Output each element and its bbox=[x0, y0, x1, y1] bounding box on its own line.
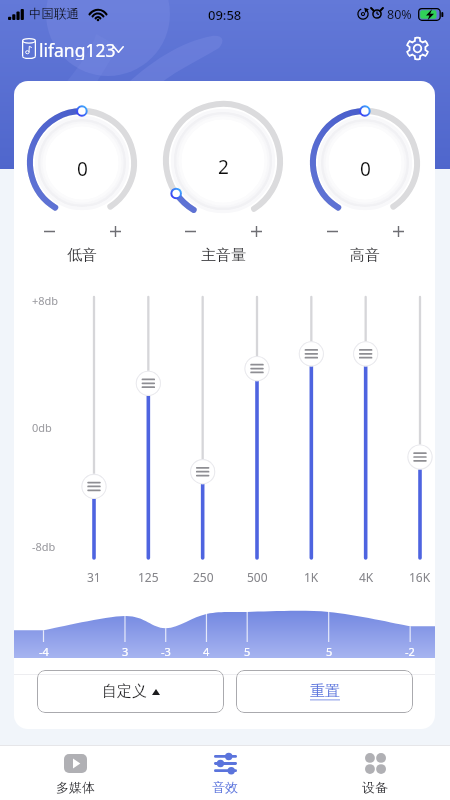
staticText: 5 bbox=[326, 644, 333, 659]
staticText: 500 bbox=[247, 569, 268, 585]
button[interactable]: Band 500 level bbox=[240, 291, 274, 564]
button[interactable]: 自定义 bbox=[37, 670, 224, 713]
button[interactable]: Decrease 主音量 bbox=[179, 220, 201, 242]
staticText: 80% bbox=[387, 6, 412, 23]
staticText: 0 bbox=[360, 156, 371, 182]
button[interactable]: lifang123 bbox=[16, 32, 129, 66]
staticText: 3 bbox=[122, 644, 129, 659]
button[interactable]: 设备 bbox=[300, 746, 450, 795]
staticText: 2 bbox=[218, 154, 229, 180]
button[interactable]: Band 250 level bbox=[186, 291, 220, 564]
staticText: 重置 bbox=[310, 682, 340, 701]
staticText: 多媒体 bbox=[56, 779, 95, 795]
button[interactable]: 重置 bbox=[236, 670, 413, 713]
staticText: 0 bbox=[77, 156, 88, 182]
staticText: 低音 bbox=[67, 246, 97, 265]
staticText: 125 bbox=[138, 569, 159, 585]
staticText: 5 bbox=[244, 644, 251, 659]
staticText: +8db bbox=[32, 293, 59, 308]
staticText: 1K bbox=[304, 569, 319, 585]
staticText: -4 bbox=[39, 644, 49, 659]
staticText: 0db bbox=[32, 420, 52, 435]
button[interactable]: Increase 低音 bbox=[104, 220, 126, 242]
staticText: 音效 bbox=[212, 779, 238, 795]
button[interactable]: Decrease 高音 bbox=[321, 220, 343, 242]
staticText: 中国联通 bbox=[29, 6, 79, 22]
staticText: 16K bbox=[409, 569, 431, 585]
button[interactable]: Band 4K level bbox=[349, 291, 383, 564]
staticText: 09:58 bbox=[208, 6, 242, 24]
button[interactable]: Settings bbox=[399, 30, 435, 66]
staticText: 250 bbox=[193, 569, 214, 585]
staticText: lifang123 bbox=[39, 38, 116, 60]
staticText: 主音量 bbox=[201, 246, 246, 265]
button[interactable]: Increase 高音 bbox=[387, 220, 409, 242]
staticText: 自定义 bbox=[102, 682, 147, 701]
staticText: 高音 bbox=[350, 246, 380, 265]
staticText: -2 bbox=[405, 644, 415, 659]
button[interactable]: Band 31 level bbox=[77, 291, 111, 564]
button[interactable]: Increase 主音量 bbox=[245, 220, 267, 242]
staticText: 4K bbox=[359, 569, 374, 585]
staticText: 设备 bbox=[362, 779, 388, 795]
button[interactable]: Band 125 level bbox=[131, 291, 165, 564]
button[interactable]: 多媒体 bbox=[0, 746, 150, 795]
staticText: 4 bbox=[203, 644, 210, 659]
staticText: 31 bbox=[87, 569, 101, 585]
button[interactable]: 音效 bbox=[150, 746, 300, 795]
staticText: -8db bbox=[32, 539, 56, 554]
staticText: -3 bbox=[161, 644, 171, 659]
button[interactable]: Band 16K level bbox=[403, 291, 435, 564]
button[interactable]: Decrease 低音 bbox=[38, 220, 60, 242]
button[interactable]: Band 1K level bbox=[294, 291, 328, 564]
